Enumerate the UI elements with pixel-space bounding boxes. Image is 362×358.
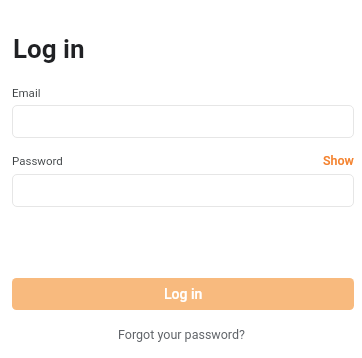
staticText: Log in (164, 286, 203, 302)
staticText: Show (323, 153, 354, 168)
button[interactable]: Email input field (12, 105, 354, 138)
button[interactable]: Show (323, 153, 354, 168)
button[interactable]: Log in (12, 278, 354, 310)
button[interactable]: Forgot your password? (118, 327, 245, 342)
staticText: Password (12, 154, 63, 167)
staticText: Log in (13, 34, 85, 64)
staticText: Email (12, 86, 41, 99)
staticText: Forgot your password? (118, 327, 245, 342)
button[interactable]: Password input field (12, 174, 354, 207)
